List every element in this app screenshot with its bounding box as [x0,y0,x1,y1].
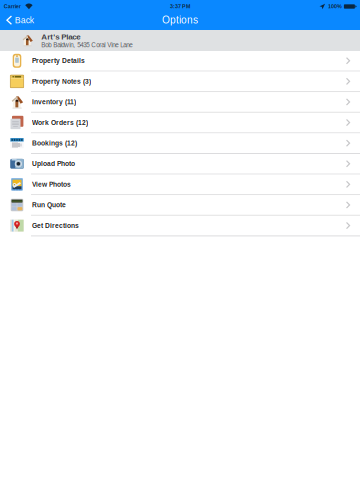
button[interactable]: Property Notes (3) [0,72,360,92]
staticText: Inventory (11) [32,98,76,106]
button[interactable]: View Photos [0,175,360,195]
staticText: 100% [328,3,342,9]
staticText: Get Directions [32,222,79,229]
staticText: Property Details [32,57,85,64]
staticText: Property Notes (3) [32,78,91,85]
staticText: Options [162,14,198,25]
button[interactable]: Upload Photo [0,154,360,175]
staticText: View Photos [32,181,71,188]
staticText: Run Quote [32,201,66,209]
staticText: 3:37 PM [170,3,190,9]
button[interactable]: Work Orders (12) [0,113,360,133]
staticText: Bookings (12) [32,139,77,147]
button[interactable]: Bookings (12) [0,133,360,154]
staticText: Work Orders (12) [32,119,88,126]
button[interactable]: Run Quote [0,195,360,216]
staticText: Bob Baldwin, 5435 Coral Vine Lane [41,42,132,49]
button[interactable]: Property Details [0,51,360,72]
staticText: Back [15,15,34,25]
staticText: Art's Place [41,32,80,41]
staticText: Carrier [4,3,21,9]
staticText: Upload Photo [32,160,75,167]
button[interactable]: Inventory (11) [0,92,360,113]
button[interactable]: Get Directions [0,216,360,236]
button[interactable]: Back [0,13,40,30]
